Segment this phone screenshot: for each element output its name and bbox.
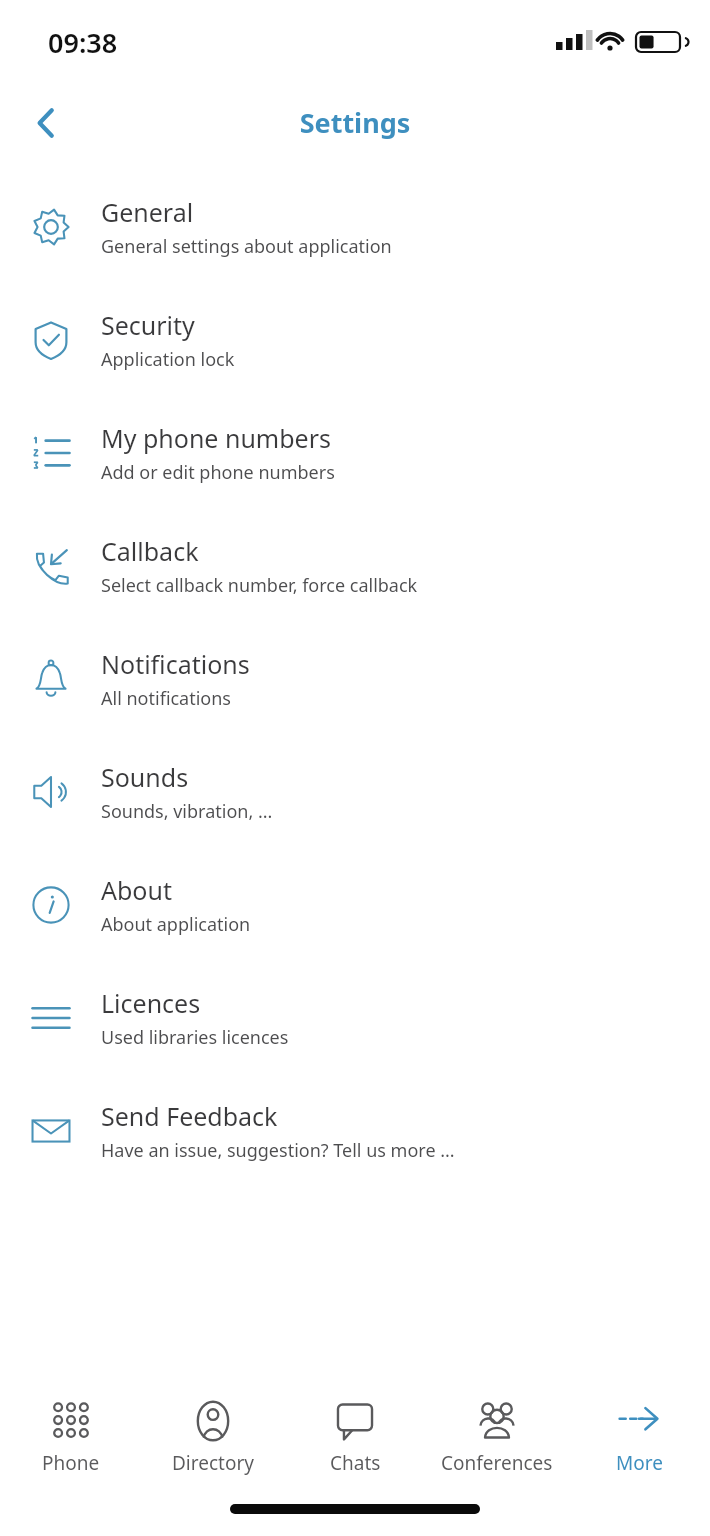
- staticText: Add or edit phone numbers: [101, 460, 335, 485]
- button[interactable]: Conferences: [426, 1390, 568, 1490]
- button[interactable]: More: [568, 1390, 710, 1490]
- button[interactable]: Chats: [284, 1390, 426, 1490]
- staticText: Chats: [330, 1450, 381, 1476]
- staticText: Conferences: [441, 1450, 553, 1476]
- staticText: More: [616, 1450, 663, 1476]
- staticText: Sounds, vibration, ...: [101, 799, 273, 824]
- staticText: Directory: [172, 1450, 254, 1476]
- button[interactable]: General: [0, 170, 710, 283]
- staticText: About application: [101, 912, 251, 937]
- staticText: Notifications: [101, 647, 250, 681]
- staticText: Application lock: [101, 347, 235, 372]
- staticText: General: [101, 195, 194, 229]
- staticText: Send Feedback: [101, 1099, 278, 1133]
- button[interactable]: Back: [10, 84, 82, 162]
- button[interactable]: Send Feedback: [0, 1074, 710, 1187]
- staticText: General settings about application: [101, 234, 392, 259]
- staticText: Callback: [101, 534, 199, 568]
- staticText: All notifications: [101, 686, 231, 711]
- staticText: Licences: [101, 986, 201, 1020]
- staticText: 09:38: [48, 24, 118, 61]
- button[interactable]: Directory: [142, 1390, 284, 1490]
- button[interactable]: Licences: [0, 961, 710, 1074]
- button[interactable]: My phone numbers: [0, 396, 710, 509]
- button[interactable]: Phone: [0, 1390, 142, 1490]
- staticText: Used libraries licences: [101, 1025, 289, 1050]
- staticText: About: [101, 873, 172, 907]
- staticText: Settings: [0, 104, 710, 141]
- staticText: Sounds: [101, 760, 189, 794]
- staticText: Phone: [42, 1450, 100, 1476]
- staticText: Select callback number, force callback: [101, 573, 418, 598]
- staticText: My phone numbers: [101, 421, 331, 455]
- button[interactable]: Security: [0, 283, 710, 396]
- staticText: Have an issue, suggestion? Tell us more …: [101, 1138, 455, 1163]
- button[interactable]: Notifications: [0, 622, 710, 735]
- button[interactable]: About: [0, 848, 710, 961]
- button[interactable]: Sounds: [0, 735, 710, 848]
- staticText: Security: [101, 308, 195, 342]
- button[interactable]: Callback: [0, 509, 710, 622]
